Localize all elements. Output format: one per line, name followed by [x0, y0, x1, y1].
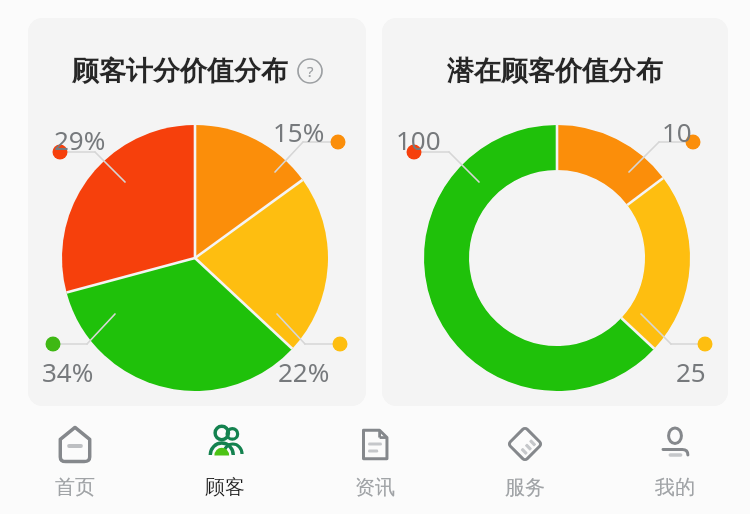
staticText: 34% — [42, 354, 94, 389]
staticText: 顾客 — [205, 475, 245, 500]
button[interactable]: 资讯 — [300, 406, 450, 514]
staticText: 22% — [278, 354, 330, 389]
staticText: 我的 — [655, 475, 695, 500]
button[interactable]: Help — [297, 58, 323, 84]
staticText: ? — [307, 61, 314, 81]
staticText: 资讯 — [355, 475, 395, 500]
button[interactable]: 服务 — [450, 406, 600, 514]
staticText: 潜在顾客价值分布 — [447, 54, 663, 88]
button[interactable]: 我的 — [600, 406, 750, 514]
staticText: 29% — [54, 122, 106, 157]
staticText: 顾客计分价值分布 — [72, 54, 288, 88]
button[interactable]: 潜在顾客价值分布 — [382, 18, 728, 406]
staticText: 服务 — [505, 475, 545, 500]
staticText: 10 — [662, 114, 692, 149]
button[interactable]: 顾客 — [150, 406, 300, 514]
staticText: 15% — [273, 114, 325, 149]
staticText: 25 — [676, 354, 706, 389]
button[interactable]: 顾客计分价值分布 — [28, 18, 366, 406]
staticText: 100 — [396, 122, 441, 157]
button[interactable]: 首页 — [0, 406, 150, 514]
staticText: 首页 — [55, 475, 95, 500]
